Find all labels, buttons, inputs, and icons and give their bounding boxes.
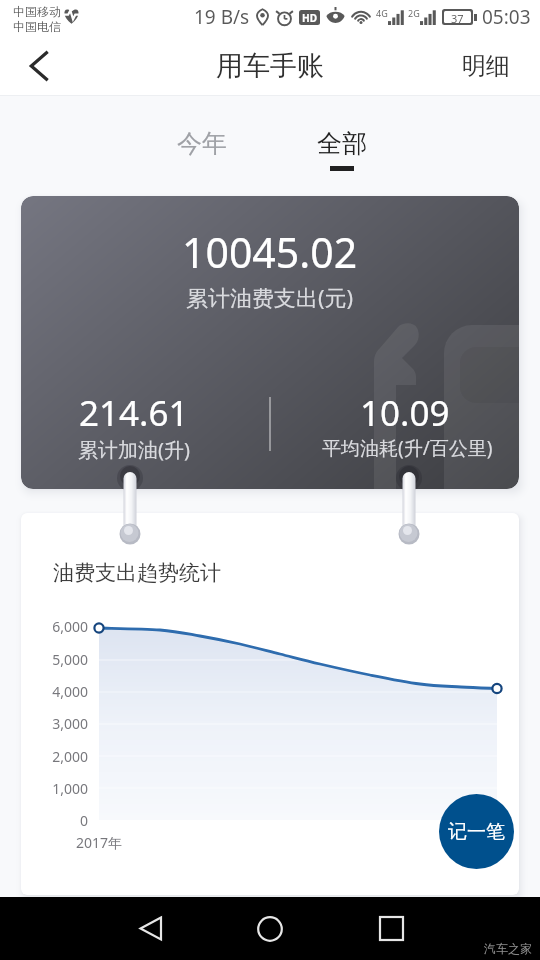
button[interactable]: 油费支出趋势统计 — [21, 513, 519, 895]
button[interactable]: Recents — [367, 897, 415, 960]
staticText: 05:03 — [482, 4, 531, 30]
button[interactable]: Back — [127, 897, 175, 960]
staticText: 今年 — [177, 128, 227, 159]
staticText: 中国移动 — [13, 4, 61, 19]
staticText: 4,000 — [28, 682, 88, 701]
button[interactable]: 全部 — [301, 117, 383, 182]
staticText: 1,000 — [28, 779, 88, 798]
staticText: 用车手账 — [216, 49, 324, 83]
staticText: 全部 — [317, 128, 367, 159]
staticText: 明细 — [462, 51, 510, 81]
button[interactable]: 明细 — [440, 36, 540, 95]
staticText: 0 — [28, 811, 88, 830]
button[interactable]: Back — [10, 36, 66, 95]
staticText: 平均油耗(升/百公里) — [322, 435, 493, 461]
staticText: 2017年 — [76, 833, 123, 852]
staticText: HD — [302, 11, 317, 25]
staticText: 5,000 — [28, 650, 88, 669]
button[interactable]: 10045.02 — [21, 196, 519, 489]
staticText: 中国电信 — [13, 19, 61, 34]
staticText: 记一笔 — [448, 820, 505, 844]
staticText: 3,000 — [28, 714, 88, 733]
button[interactable]: 记一笔 — [439, 794, 514, 869]
staticText: 214.61 — [79, 389, 189, 437]
staticText: 累计加油(升) — [78, 436, 190, 463]
staticText: 6,000 — [28, 617, 88, 636]
staticText: 2G — [408, 7, 420, 19]
staticText: 10.09 — [360, 389, 450, 437]
staticText: 37 — [451, 11, 464, 23]
button[interactable]: 今年 — [161, 117, 243, 170]
button[interactable]: Home — [246, 897, 294, 960]
staticText: 4G — [376, 7, 388, 19]
staticText: 汽车之家 — [484, 941, 532, 956]
staticText: 10045.02 — [182, 224, 358, 280]
staticText: 油费支出趋势统计 — [53, 560, 221, 586]
staticText: 累计油费支出(元) — [186, 282, 354, 312]
staticText: 2,000 — [28, 747, 88, 766]
staticText: 19 B/s — [194, 4, 250, 30]
